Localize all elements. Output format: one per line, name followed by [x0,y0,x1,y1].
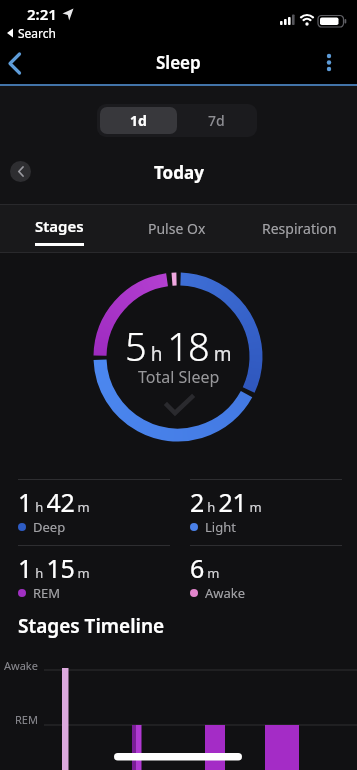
button[interactable] [0,46,40,82]
staticText: REM [15,712,38,727]
staticText: 1 h 42 m [18,485,90,519]
staticText: Stages Timeline [18,613,165,639]
button[interactable]: 1 h 15 m [18,545,170,609]
button[interactable]: 1 h 42 m [18,479,170,543]
staticText: Awake [205,584,246,602]
staticText: Awake [4,658,38,673]
button[interactable] [20,205,120,253]
staticText: Respiration [262,219,337,238]
staticText: Light [205,518,236,536]
staticText: 5 h 18 m [125,320,232,372]
staticText: 1d [130,111,147,130]
button[interactable]: 6 m [190,545,342,609]
staticText: 6 m [190,551,223,585]
staticText: REM [33,584,61,602]
button[interactable] [250,205,357,253]
staticText: Stages [35,216,84,236]
button[interactable]: 1d [100,107,177,134]
button[interactable] [315,46,355,82]
staticText: Search [18,25,56,41]
staticText: Pulse Ox [148,219,206,238]
staticText: 2 h 21 m [190,485,262,519]
staticText: Deep [33,518,66,536]
staticText: 1 h 15 m [18,551,90,585]
button[interactable] [10,161,31,182]
button[interactable]: 2 h 21 m [190,479,342,543]
button[interactable]: 7d [177,107,255,134]
staticText: Total Sleep [138,366,220,388]
staticText: Today [154,161,204,184]
staticText: Sleep [156,51,201,74]
button[interactable] [135,205,235,253]
staticText: 7d [208,111,225,130]
staticText: 2:21 [27,4,57,24]
